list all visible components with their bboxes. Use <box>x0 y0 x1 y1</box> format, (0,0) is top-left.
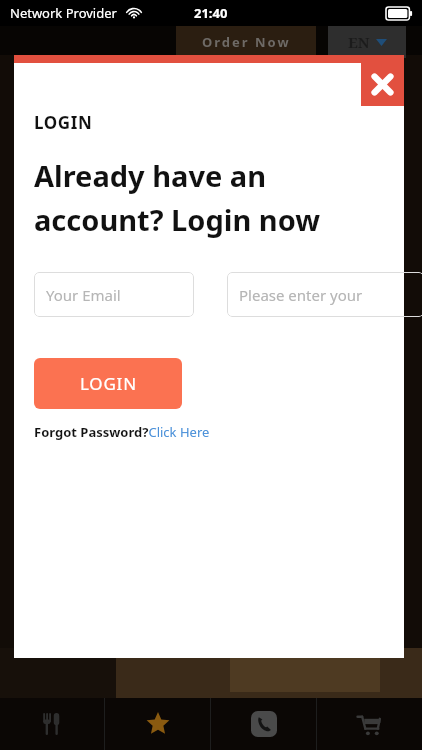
staticText: 21:40 <box>194 4 228 22</box>
staticText: LOGIN <box>34 111 93 134</box>
staticText: Network Provider <box>10 4 117 22</box>
button[interactable]: LOGIN <box>34 358 182 409</box>
button[interactable]: Please enter your password <box>227 272 422 317</box>
button[interactable]: Order Now <box>176 26 316 58</box>
staticText: Your Email <box>46 285 121 305</box>
staticText: Already have an account? Login now <box>34 156 321 239</box>
button[interactable]: Cart <box>317 698 422 750</box>
staticText: Please enter your password <box>239 285 422 305</box>
button[interactable]: Menu <box>0 698 104 750</box>
staticText: Order Now <box>202 33 291 51</box>
button[interactable]: Forgot Password?Click Here <box>34 423 210 441</box>
staticText: EN <box>348 32 370 52</box>
button[interactable]: Call <box>211 698 316 750</box>
staticText: LOGIN <box>80 372 137 395</box>
button[interactable]: EN <box>328 26 406 58</box>
button[interactable]: Close <box>361 63 404 106</box>
staticText: Forgot Password?Click Here <box>34 423 210 441</box>
button[interactable]: Favorites <box>105 698 210 750</box>
button[interactable]: Your Email <box>34 272 194 317</box>
